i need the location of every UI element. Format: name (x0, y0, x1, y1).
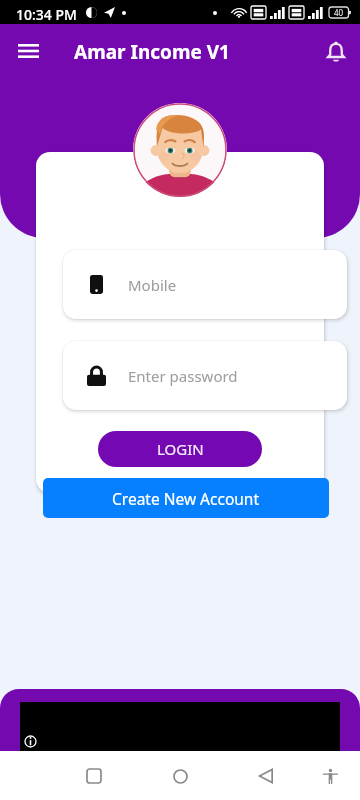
button[interactable]: Notifications (312, 24, 358, 70)
staticText: Create New Account (112, 488, 260, 509)
staticText: Amar Income V1 (74, 39, 230, 65)
staticText: Enter password (128, 366, 238, 386)
staticText: 40 (334, 7, 344, 18)
button[interactable]: Recents (70, 752, 118, 800)
button[interactable]: Accessibility (306, 752, 354, 800)
staticText: Mobile (128, 275, 177, 295)
button[interactable]: LOGIN (98, 431, 262, 467)
button[interactable]: Menu (5, 24, 51, 70)
button[interactable]: Back (242, 752, 290, 800)
button[interactable]: Mobile (63, 250, 347, 319)
button[interactable]: Enter password (63, 341, 347, 410)
staticText: LOGIN (157, 439, 204, 459)
button[interactable]: Create New Account (43, 478, 329, 518)
staticText: 10:34 PM (16, 5, 77, 24)
button[interactable]: Home (156, 752, 204, 800)
